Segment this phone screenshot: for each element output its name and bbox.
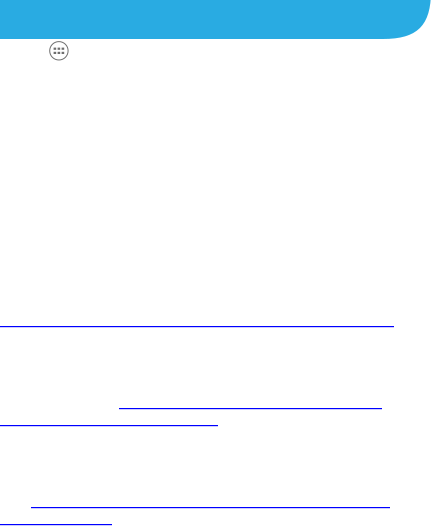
button[interactable]: Link — [0, 509, 112, 525]
button[interactable]: Link — [0, 410, 218, 426]
button[interactable]: Apps — [50, 42, 68, 60]
button[interactable]: Link — [31, 492, 390, 508]
button[interactable]: Link — [119, 393, 382, 409]
button[interactable]: Link — [0, 311, 394, 327]
